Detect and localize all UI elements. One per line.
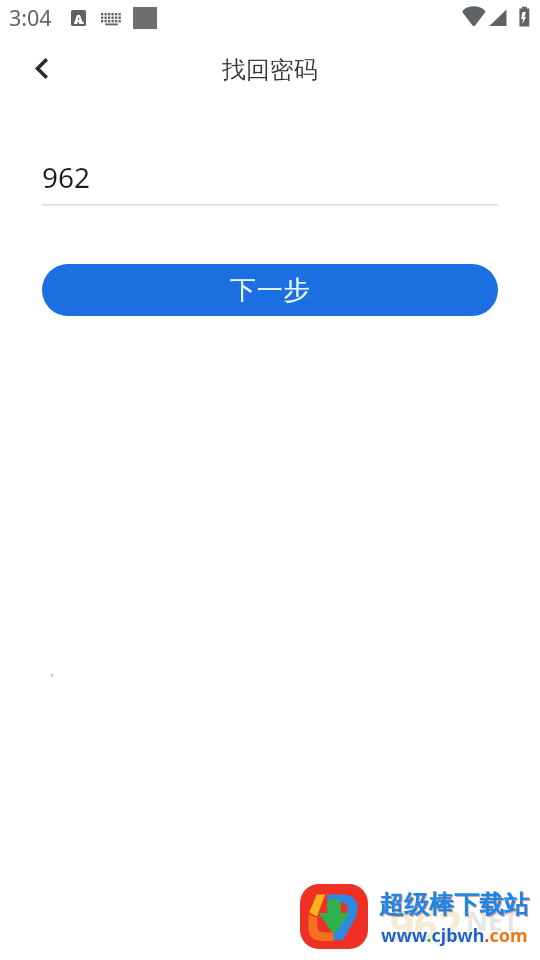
staticText: A [74,10,83,26]
button[interactable]: 下一步 [42,264,498,316]
staticText: 下一步 [230,274,311,307]
button[interactable]: Back [18,45,64,91]
staticText: 超级棒下载站 [380,890,530,921]
staticText: 找回密码 [0,55,540,85]
staticText: 超级棒下载站 [379,889,529,920]
staticText: NET [466,902,519,939]
staticText: 962 [42,158,91,196]
staticText: 962 [390,896,463,953]
staticText: www.cjbwh.com [381,923,528,948]
staticText: 3:04 [9,3,52,32]
button[interactable]: 962 [42,152,498,206]
